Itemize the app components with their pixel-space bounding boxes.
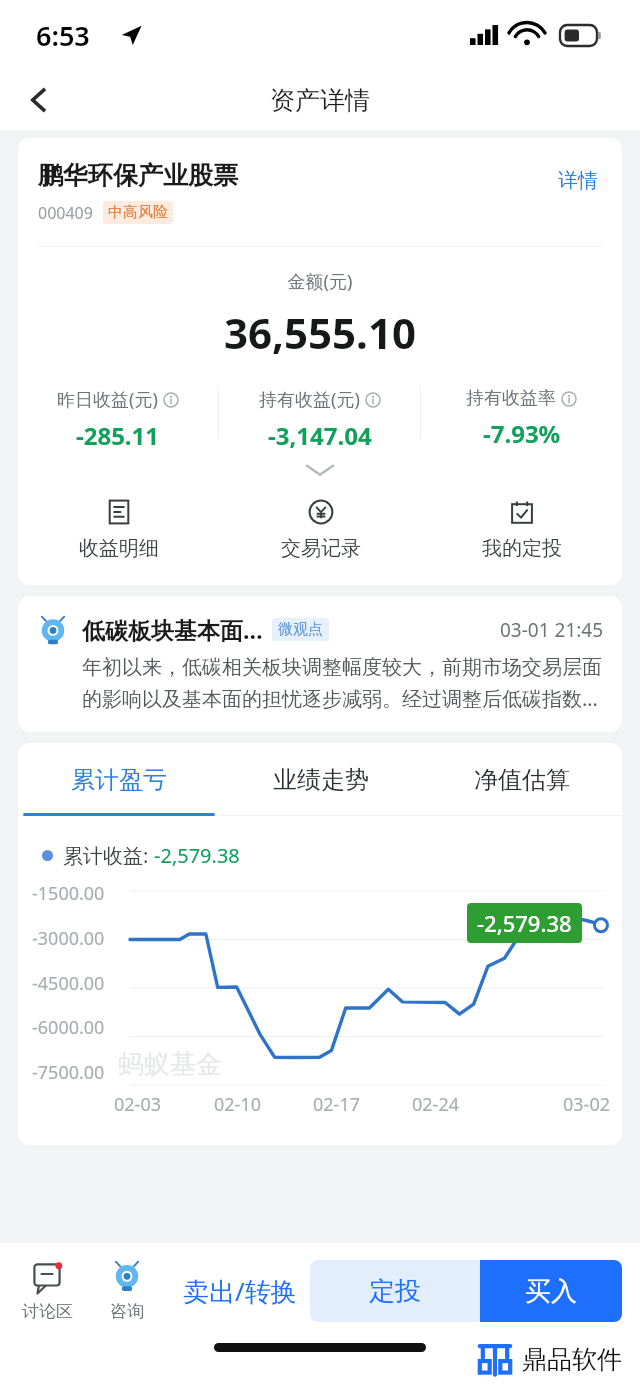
staticText: 累计收益: [63,842,154,869]
staticText: -7.93% [483,417,561,450]
staticText: 02-24 [412,1092,459,1117]
button[interactable]: 持有收益(元) [219,387,420,452]
staticText: 低碳板块基本面… [82,614,263,645]
staticText: 定投 [369,1275,421,1308]
staticText: 年初以来，低碳相关板块调整幅度较大，前期市场交易层面的影响以及基本面的担忧逐步减… [82,655,604,712]
button[interactable]: 定投 [310,1260,480,1322]
button[interactable]: 我的定投 [421,497,622,561]
staticText: 鼎品软件 [522,1344,622,1375]
staticText: 资产详情 [270,85,370,116]
button[interactable]: 卖出/转换 [170,1243,310,1339]
staticText: -2,579.38 [477,908,572,938]
button[interactable]: 收益明细 [18,497,220,561]
staticText: 咨询 [110,1301,144,1322]
staticText: -6000.00 [32,1015,105,1040]
staticText: -1500.00 [32,881,105,906]
button[interactable]: 持有收益率 [421,387,622,450]
button[interactable]: 讨论区 [14,1261,80,1322]
staticText: 鹏华环保产业股票 [38,160,238,191]
staticText: 蚂蚁基金 [118,1048,222,1081]
staticText: 我的定投 [482,536,562,561]
staticText: 02-03 [114,1092,161,1117]
staticText: 详情 [558,168,598,193]
staticText: 02-10 [214,1092,261,1117]
staticText: 持有收益(元) [259,387,360,412]
staticText: 净值估算 [474,765,570,795]
button[interactable]: 业绩走势 [220,743,421,816]
button[interactable]: 净值估算 [421,743,622,816]
staticText: -285.11 [76,419,160,452]
staticText: 中高风险 [108,203,168,222]
button[interactable]: 详情 [554,164,602,197]
staticText: 持有收益率 [466,387,556,410]
staticText: -3,147.04 [268,419,372,452]
button[interactable]: 买入 [480,1260,622,1322]
staticText: -2,579.38 [154,842,240,869]
button[interactable]: Expand [18,457,622,483]
staticText: 讨论区 [22,1301,73,1322]
staticText: 买入 [525,1275,577,1308]
staticText: 000409 [38,202,93,224]
staticText: 微观点 [278,620,323,639]
staticText: 36,555.10 [18,304,622,361]
staticText: 6:53 [36,17,90,54]
staticText: 03-01 21:45 [500,617,604,643]
staticText: 金额(元) [18,269,622,294]
button[interactable]: 咨询 [94,1261,160,1322]
button[interactable]: 昨日收益(元) [18,387,218,452]
staticText: 业绩走势 [273,765,369,795]
button[interactable]: 交易记录 [220,497,421,561]
button[interactable]: Back [14,75,64,125]
staticText: 卖出/转换 [183,1273,297,1309]
staticText: -7500.00 [32,1060,105,1085]
staticText: 收益明细 [79,536,159,561]
staticText: -4500.00 [32,971,105,996]
button[interactable]: 低碳板块基本面… [18,596,622,732]
staticText: 交易记录 [281,536,361,561]
button[interactable]: 累计盈亏 [18,743,220,816]
staticText: 昨日收益(元) [57,387,158,412]
staticText: 03-02 [563,1092,610,1117]
staticText: 02-17 [313,1092,360,1117]
staticText: 累计盈亏 [71,765,167,795]
staticText: -3000.00 [32,926,105,951]
